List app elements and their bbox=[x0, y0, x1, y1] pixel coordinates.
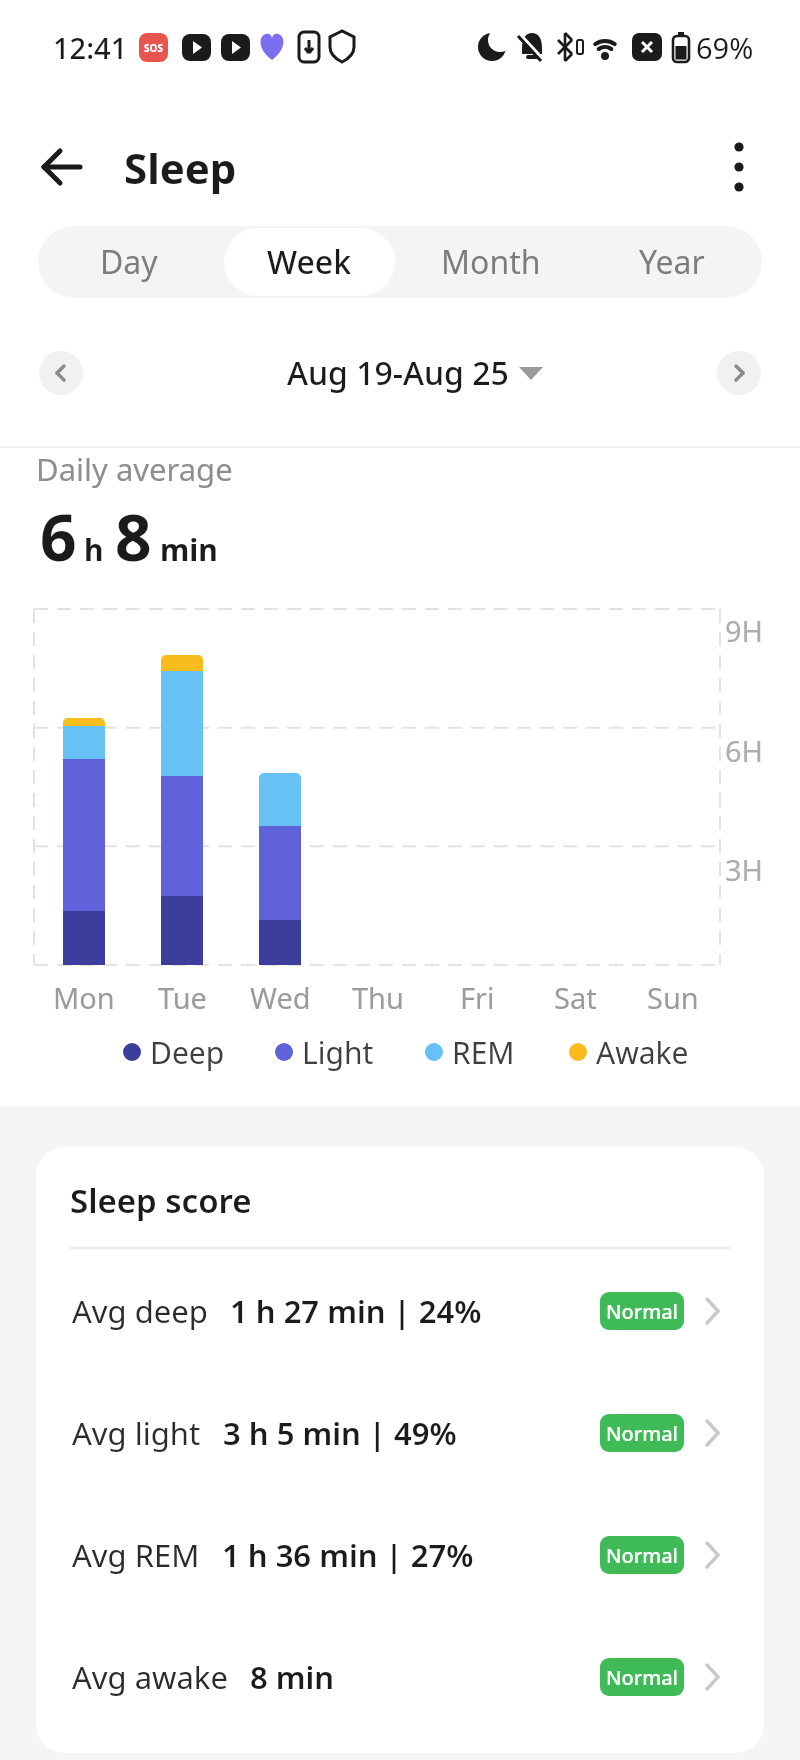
staticText: min bbox=[160, 529, 218, 570]
staticText: REM bbox=[452, 1032, 515, 1073]
staticText: Wed bbox=[250, 978, 311, 1017]
staticText: Sat bbox=[554, 978, 597, 1017]
staticText: Normal bbox=[606, 1664, 678, 1691]
staticText: 1 h 36 min | 27% bbox=[222, 1534, 474, 1576]
staticText: Week bbox=[267, 240, 352, 284]
staticText: 1 h 27 min | 24% bbox=[230, 1290, 482, 1332]
button[interactable] bbox=[717, 351, 761, 395]
staticText: Deep bbox=[150, 1032, 225, 1073]
staticText: 8 min bbox=[250, 1656, 335, 1698]
staticText: Fri bbox=[460, 978, 495, 1017]
staticText: 12:41 bbox=[53, 28, 128, 67]
staticText: Tue bbox=[158, 978, 207, 1017]
staticText: Day bbox=[100, 240, 158, 284]
button[interactable]: Normal bbox=[600, 1292, 684, 1330]
staticText: h bbox=[84, 529, 104, 570]
staticText: Normal bbox=[606, 1420, 678, 1447]
staticText: Thu bbox=[352, 978, 404, 1017]
staticText: 3 h 5 min | 49% bbox=[223, 1412, 457, 1454]
button[interactable]: Year bbox=[581, 226, 762, 298]
button[interactable]: Normal bbox=[600, 1414, 684, 1452]
staticText: 3H bbox=[725, 850, 764, 889]
button[interactable]: Avg REM bbox=[72, 1525, 474, 1585]
staticText: Mon bbox=[53, 978, 115, 1017]
staticText: Sun bbox=[647, 978, 699, 1017]
staticText: Sleep bbox=[124, 139, 237, 196]
button[interactable]: Month bbox=[400, 226, 581, 298]
staticText: Awake bbox=[596, 1032, 689, 1073]
button[interactable]: Week bbox=[219, 226, 400, 298]
staticText: Sleep score bbox=[70, 1178, 252, 1223]
staticText: Aug 19-Aug 25 bbox=[287, 351, 509, 395]
staticText: Normal bbox=[606, 1542, 678, 1569]
button[interactable]: Normal bbox=[600, 1658, 684, 1696]
button[interactable]: Day bbox=[38, 226, 219, 298]
staticText: 6 bbox=[40, 493, 77, 580]
staticText: Normal bbox=[606, 1298, 678, 1325]
staticText: Light bbox=[302, 1032, 374, 1073]
staticText: 8 bbox=[115, 493, 152, 580]
button[interactable]: Normal bbox=[600, 1536, 684, 1574]
button[interactable] bbox=[717, 145, 761, 191]
staticText: 69% bbox=[696, 28, 754, 67]
button[interactable]: Avg awake bbox=[72, 1647, 335, 1707]
staticText: 9H bbox=[725, 611, 764, 650]
staticText: Avg light bbox=[72, 1412, 201, 1454]
staticText: Month bbox=[441, 240, 541, 284]
button[interactable] bbox=[39, 351, 83, 395]
button[interactable] bbox=[40, 145, 86, 191]
staticText: Year bbox=[639, 240, 705, 284]
button[interactable]: Avg light bbox=[72, 1403, 457, 1463]
staticText: SOS bbox=[144, 41, 163, 55]
button[interactable]: Avg deep bbox=[72, 1281, 482, 1341]
staticText: Avg REM bbox=[72, 1534, 200, 1576]
staticText: Avg deep bbox=[72, 1290, 208, 1332]
staticText: Avg awake bbox=[72, 1656, 228, 1698]
staticText: 6H bbox=[725, 731, 764, 770]
staticText: Daily average bbox=[36, 448, 233, 490]
